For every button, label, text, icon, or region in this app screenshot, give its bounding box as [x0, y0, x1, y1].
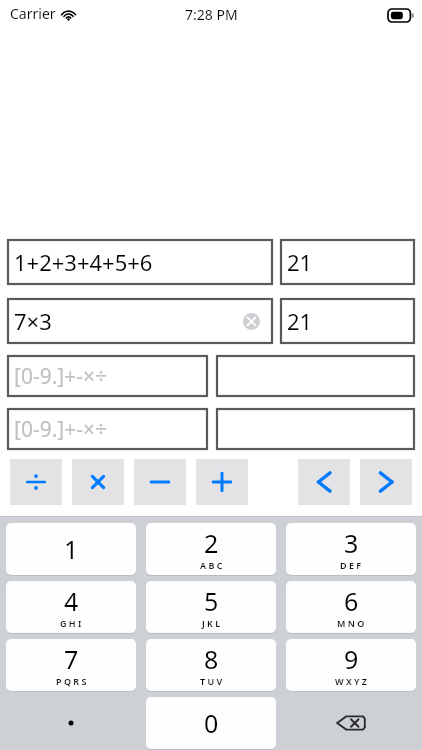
button[interactable]: 1: [6, 523, 136, 575]
button[interactable]: [0-9.]+-×÷: [8, 409, 207, 449]
button[interactable]: Plus: [196, 459, 248, 505]
button[interactable]: Backspace: [286, 697, 416, 749]
staticText: P Q R S: [56, 675, 87, 687]
button[interactable]: 1+2+3+4+5+6: [8, 240, 272, 284]
staticText: M N O: [337, 617, 365, 629]
staticText: J K L: [202, 617, 221, 629]
button[interactable]: 5: [146, 581, 276, 633]
button[interactable]: Multiply: [72, 459, 124, 505]
button[interactable]: 2: [146, 523, 276, 575]
staticText: G H I: [60, 617, 82, 629]
button[interactable]: Minus: [134, 459, 186, 505]
button[interactable]: Decimal point: [6, 697, 136, 749]
staticText: 7×3: [14, 306, 52, 336]
staticText: 6: [344, 584, 359, 618]
staticText: 1+2+3+4+5+6: [14, 247, 153, 277]
staticText: A B C: [200, 559, 223, 571]
staticText: 3: [344, 526, 359, 560]
staticText: 8: [204, 642, 219, 676]
button[interactable]: 3: [286, 523, 416, 575]
staticText: Carrier: [10, 4, 56, 23]
button[interactable]: Next field: [360, 459, 412, 505]
staticText: 7:28 PM: [185, 5, 238, 24]
staticText: [0-9.]+-×÷: [14, 362, 108, 391]
button[interactable]: [0-9.]+-×÷: [8, 356, 207, 396]
staticText: 2: [204, 526, 219, 560]
staticText: 21: [287, 247, 313, 277]
button[interactable]: 7×3: [8, 299, 272, 343]
staticText: T U V: [200, 675, 223, 687]
staticText: 7: [64, 642, 79, 676]
button[interactable]: 4: [6, 581, 136, 633]
button[interactable]: Divide: [10, 459, 62, 505]
button[interactable]: 21: [281, 299, 414, 343]
staticText: 0: [204, 706, 219, 740]
button[interactable]: [217, 409, 414, 449]
staticText: W X Y Z: [335, 675, 367, 687]
staticText: D E F: [340, 559, 362, 571]
button[interactable]: 6: [286, 581, 416, 633]
button[interactable]: [217, 356, 414, 396]
staticText: 9: [344, 642, 359, 676]
button[interactable]: 9: [286, 639, 416, 691]
staticText: 21: [287, 306, 313, 336]
staticText: 4: [64, 584, 79, 618]
button[interactable]: Clear text: [240, 310, 262, 332]
button[interactable]: Previous field: [298, 459, 350, 505]
staticText: 5: [204, 584, 219, 618]
button[interactable]: 0: [146, 697, 276, 749]
button[interactable]: 21: [281, 240, 414, 284]
button[interactable]: 7: [6, 639, 136, 691]
button[interactable]: 8: [146, 639, 276, 691]
staticText: 1: [64, 532, 79, 566]
staticText: [0-9.]+-×÷: [14, 415, 108, 444]
